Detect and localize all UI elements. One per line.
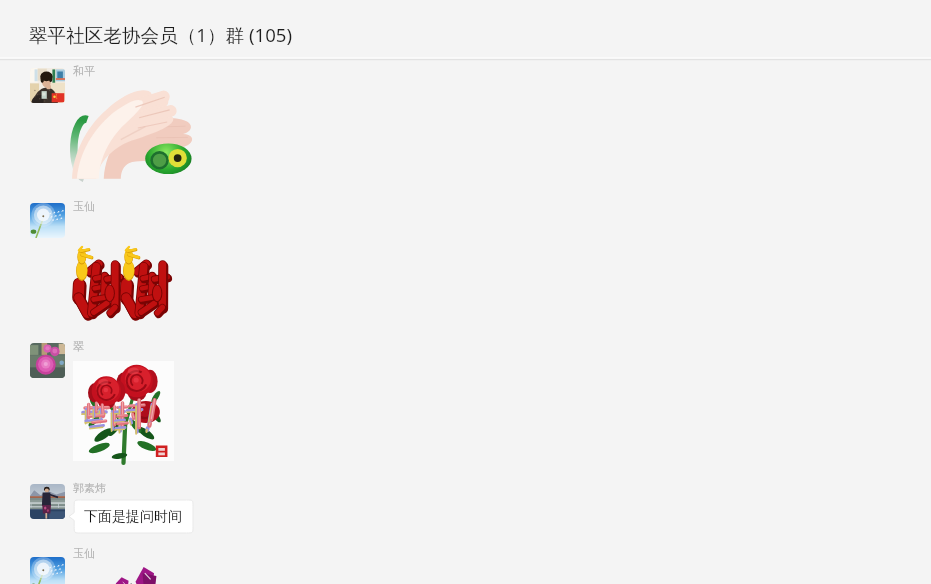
button[interactable]: 郭素炜 avatar	[30, 484, 65, 519]
staticText: 玉仙	[73, 199, 95, 213]
staticText: 翠	[73, 339, 84, 353]
button[interactable]: 翠平社区老协会员（1）群 (105)	[0, 0, 931, 59]
button[interactable]: 下面是提问时间	[69, 500, 193, 533]
staticText: 和平	[73, 64, 95, 78]
button[interactable]: 谢谢 sticker	[73, 248, 174, 317]
button[interactable]: 玉仙 avatar	[30, 557, 65, 584]
button[interactable]: 和平 avatar	[30, 68, 65, 103]
button[interactable]: 玉仙 avatar	[30, 203, 65, 238]
button[interactable]: Clapping hands sticker	[72, 82, 194, 175]
staticText: 玉仙	[73, 546, 95, 560]
button[interactable]: 翠 avatar	[30, 343, 65, 378]
staticText: 下面是提问时间	[84, 508, 182, 526]
button[interactable]: Purple flower sticker	[110, 563, 168, 584]
staticText: 翠平社区老协会员（1）群 (105)	[29, 22, 293, 47]
button[interactable]: Roses 感谢 sticker	[73, 361, 174, 461]
staticText: 郭素炜	[73, 481, 106, 495]
